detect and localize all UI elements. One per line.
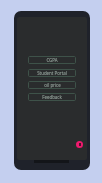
button[interactable]: CGPA [28,56,76,64]
button[interactable]: oil price [28,81,76,89]
button[interactable]: Feedback [28,93,76,101]
staticText: oil price [44,82,61,88]
staticText: CGPA [46,57,58,63]
button[interactable]: Add [76,141,83,148]
staticText: Student Portal [37,70,67,76]
button[interactable]: Student Portal [28,69,76,77]
staticText: Feedback [42,94,62,100]
